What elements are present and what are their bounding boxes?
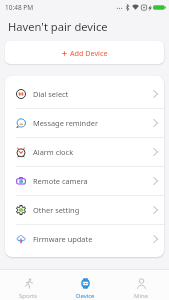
button[interactable]: Firmware update	[5, 225, 164, 253]
other: Sports	[23, 278, 34, 289]
staticText: Mine	[134, 292, 149, 300]
staticText: Dial select	[33, 89, 69, 99]
other: Mine	[136, 278, 147, 289]
staticText: Remote camera	[33, 176, 88, 186]
staticText: Other setting	[33, 205, 80, 215]
staticText: 10:48 PM	[5, 3, 34, 12]
button[interactable]: Other setting	[5, 196, 164, 224]
button[interactable]: Remote camera	[5, 167, 164, 195]
button[interactable]: Add Device	[5, 41, 164, 64]
staticText: Alarm clock	[33, 147, 74, 157]
button[interactable]: Alarm clock	[5, 138, 164, 166]
button[interactable]: Message reminder	[5, 109, 164, 137]
staticText: Firmware update	[33, 234, 93, 244]
staticText: Haven't pair device	[8, 19, 108, 34]
button[interactable]: Device	[57, 271, 113, 300]
button[interactable]: Sports	[0, 271, 57, 300]
other: Device	[80, 278, 91, 289]
staticText: Sports	[19, 292, 38, 300]
button[interactable]: Dial select	[5, 80, 164, 108]
button[interactable]: Mine	[113, 271, 169, 300]
staticText: Device	[76, 292, 95, 300]
staticText: Add Device	[70, 48, 108, 58]
staticText: Message reminder	[33, 118, 98, 128]
